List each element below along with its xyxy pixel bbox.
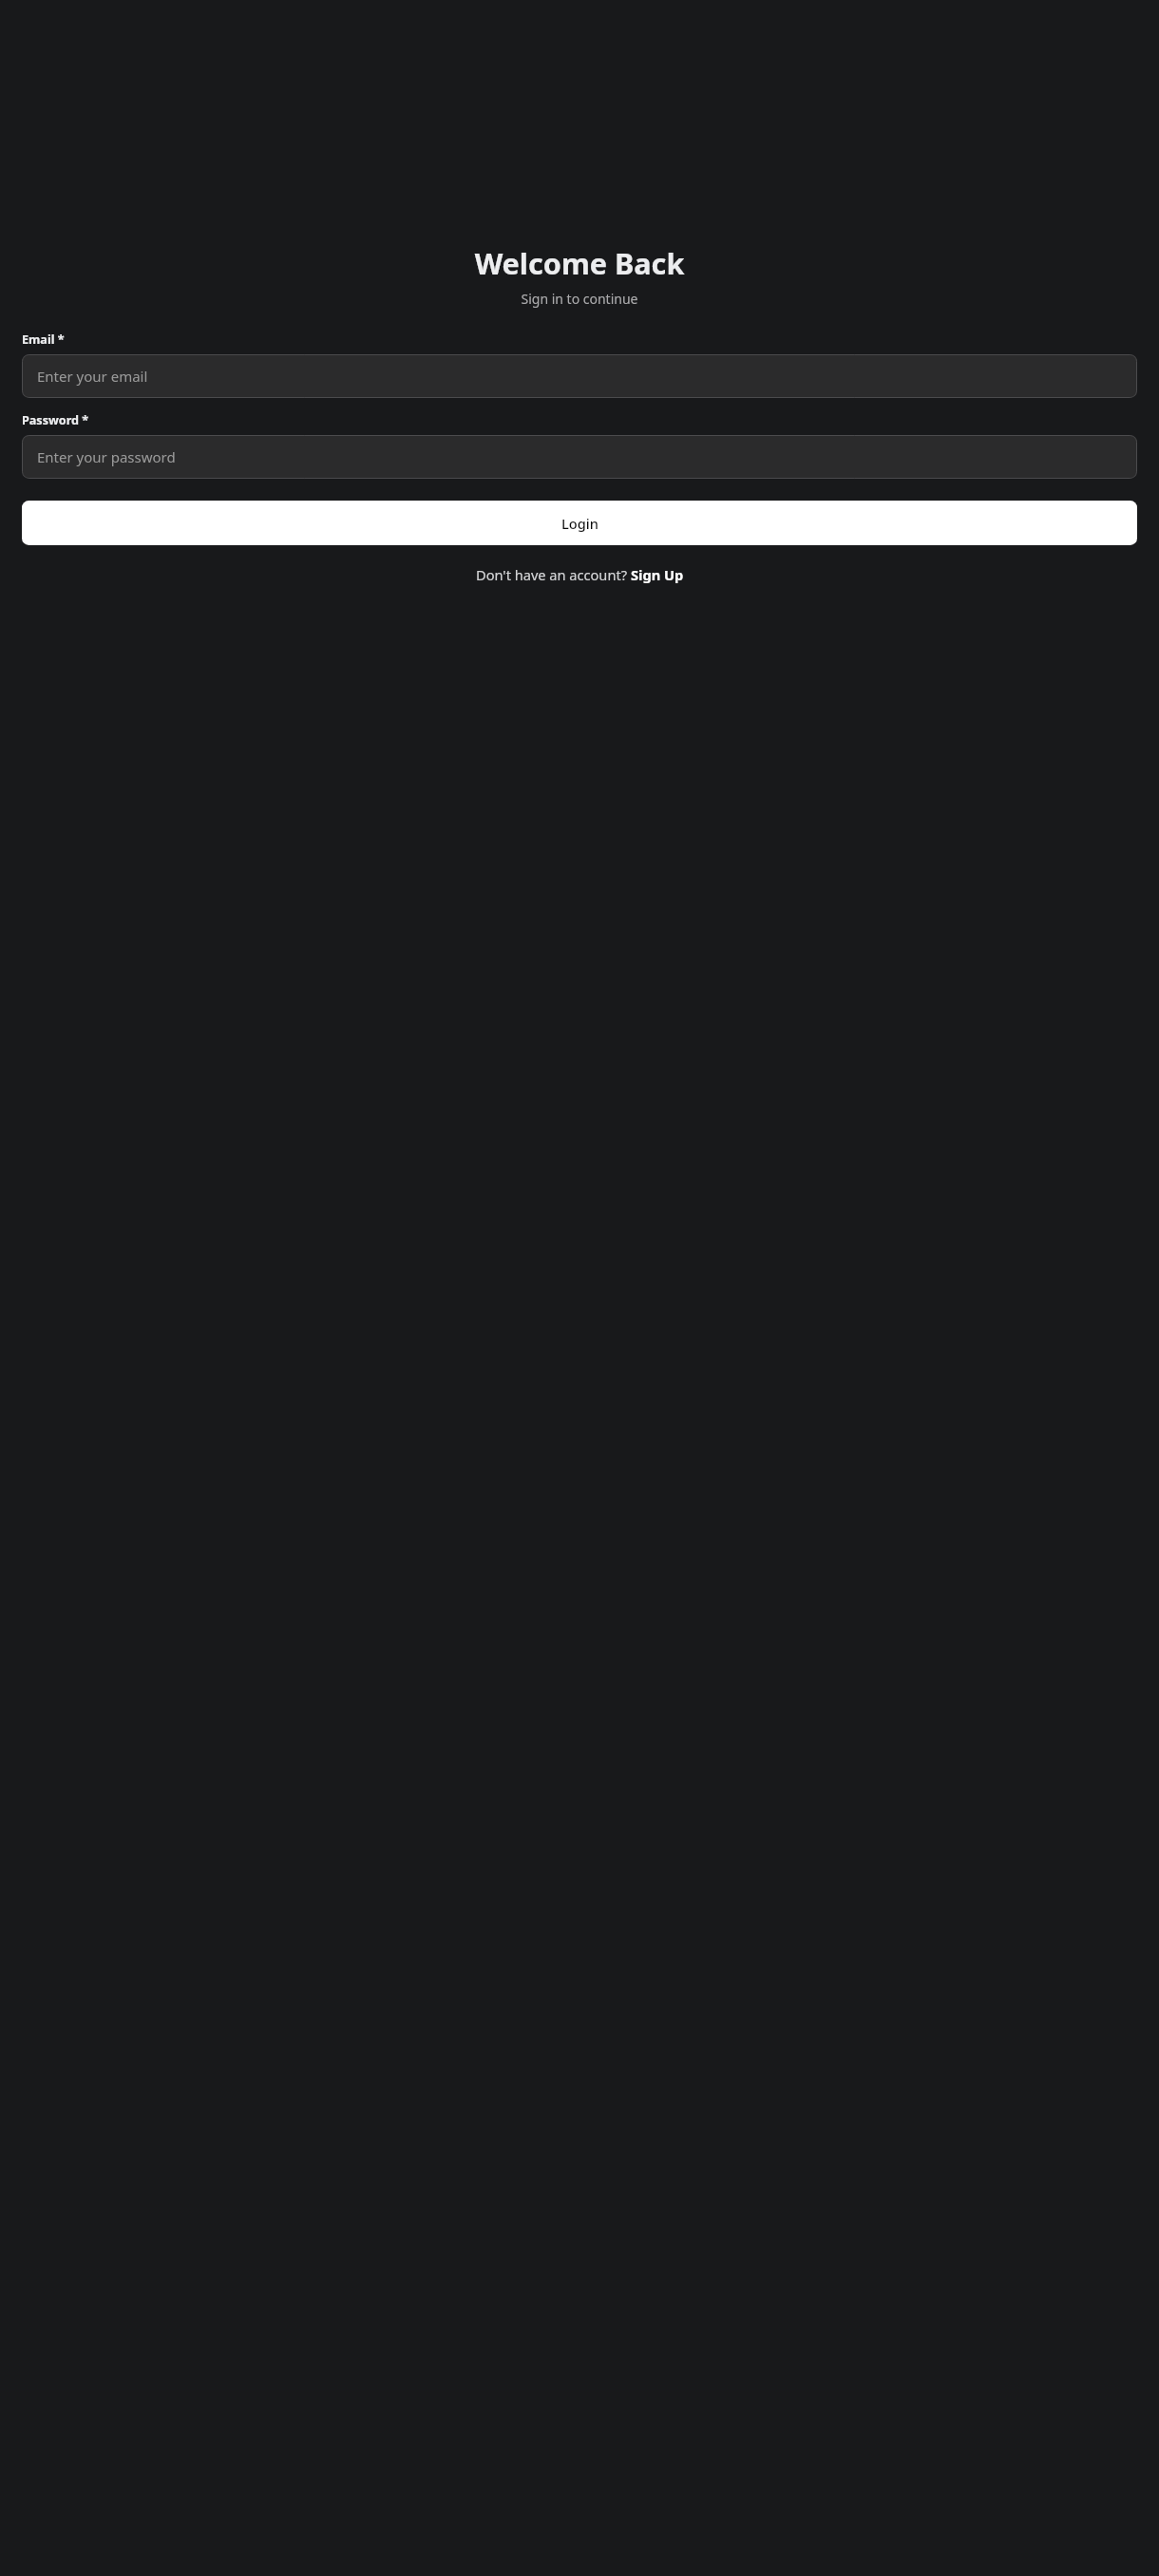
staticText: Login [561, 514, 598, 533]
staticText: Enter your password [37, 447, 176, 466]
staticText: Password * [22, 412, 89, 428]
staticText: Don't have an account? [476, 565, 631, 584]
button[interactable]: Password input field [22, 435, 1137, 479]
staticText: Welcome Back [22, 243, 1137, 283]
staticText: Email * [22, 331, 65, 348]
button[interactable]: Sign Up [631, 565, 684, 584]
staticText: Sign Up [631, 565, 684, 584]
staticText: Sign in to continue [22, 290, 1137, 308]
button[interactable]: Email input field [22, 354, 1137, 398]
staticText: Enter your email [37, 367, 148, 386]
button[interactable]: Login [22, 501, 1137, 545]
